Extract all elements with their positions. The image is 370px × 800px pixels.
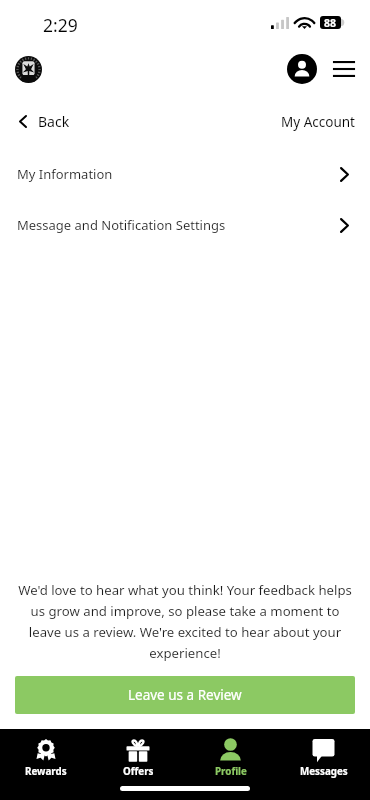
- staticText: Rewards: [25, 765, 67, 778]
- button[interactable]: Menu: [327, 52, 361, 86]
- button[interactable]: Profile: [184, 737, 277, 785]
- button[interactable]: Leave us a Review: [15, 676, 355, 714]
- staticText: 2:29: [43, 13, 78, 37]
- staticText: 88: [324, 16, 337, 29]
- staticText: Back: [38, 112, 70, 131]
- staticText: My Information: [17, 165, 113, 183]
- button[interactable]: Messages: [277, 737, 370, 785]
- staticText: My Account: [281, 113, 355, 131]
- button[interactable]: Message and Notification Settings: [0, 200, 370, 250]
- staticText: Messages: [300, 765, 348, 778]
- button[interactable]: Offers: [92, 737, 184, 785]
- staticText: Message and Notification Settings: [17, 216, 226, 234]
- button[interactable]: Back: [0, 106, 80, 136]
- staticText: Offers: [123, 765, 154, 778]
- button[interactable]: My Information: [0, 149, 370, 199]
- button[interactable]: Account: [285, 52, 319, 86]
- staticText: Leave us a Review: [128, 686, 242, 704]
- button[interactable]: Home: [15, 56, 42, 83]
- button[interactable]: Rewards: [0, 737, 92, 785]
- staticText: We'd love to hear what you think! Your f…: [15, 581, 355, 662]
- staticText: Profile: [215, 765, 247, 778]
